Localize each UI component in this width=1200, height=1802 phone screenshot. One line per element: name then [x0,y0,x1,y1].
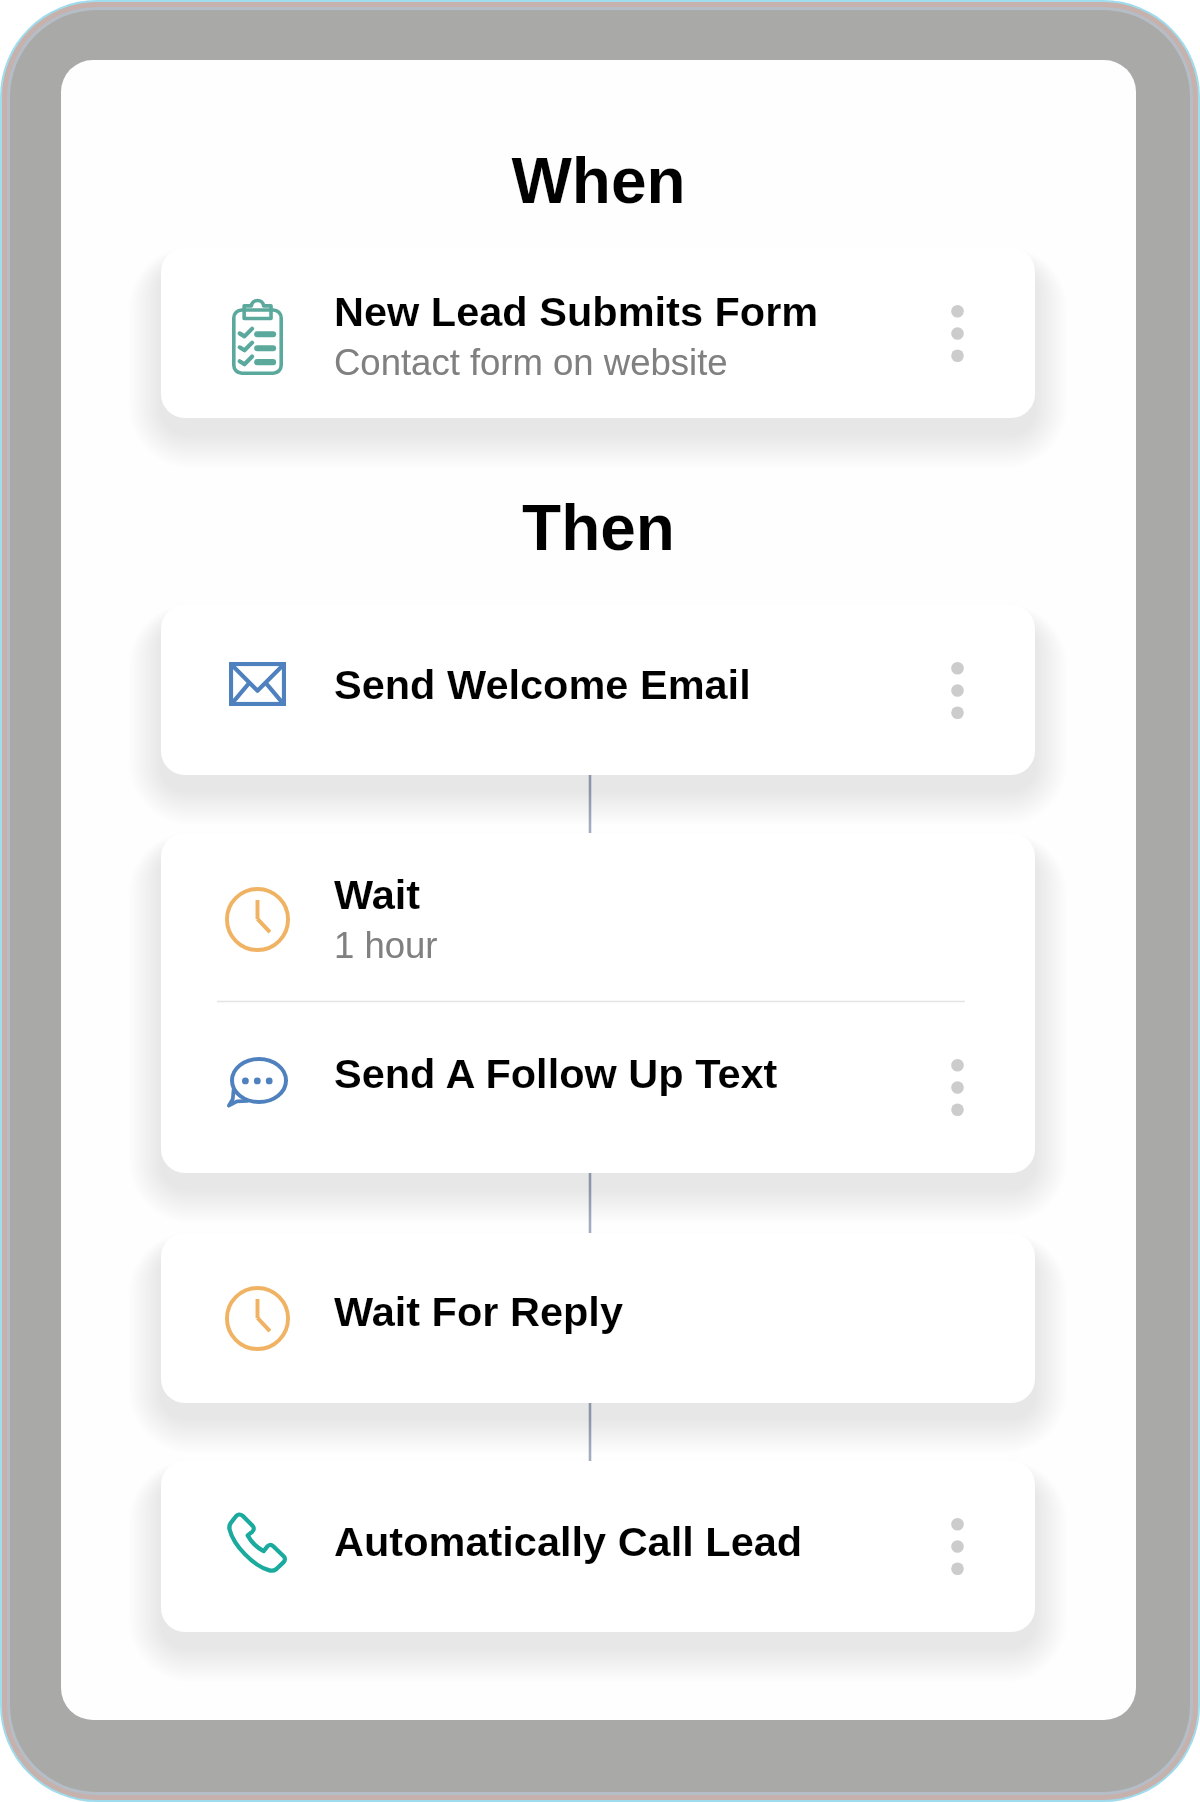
button[interactable]: Wait For Reply [161,1233,1035,1403]
staticText: Automatically Call Lead [334,1518,803,1564]
button[interactable]: Wait [161,833,1035,1173]
button[interactable]: More options [879,1461,1035,1632]
staticText: When [61,145,1136,217]
staticText: Wait For Reply [334,1288,623,1334]
staticText: New Lead Submits Form [334,288,819,334]
staticText: Wait [334,871,421,917]
staticText: 1 hour [334,925,438,966]
button[interactable]: Automatically Call Lead [161,1461,1035,1632]
button[interactable]: More options [879,1002,1035,1173]
staticText: Contact form on website [334,342,728,383]
button[interactable]: More options [879,248,1035,418]
staticText: Send A Follow Up Text [334,1050,778,1096]
staticText: Send Welcome Email [334,661,751,707]
staticText: Then [61,492,1136,564]
button[interactable]: More options [879,605,1035,775]
button[interactable]: Send Welcome Email [161,605,1035,775]
button[interactable]: New Lead Submits Form [161,248,1035,418]
